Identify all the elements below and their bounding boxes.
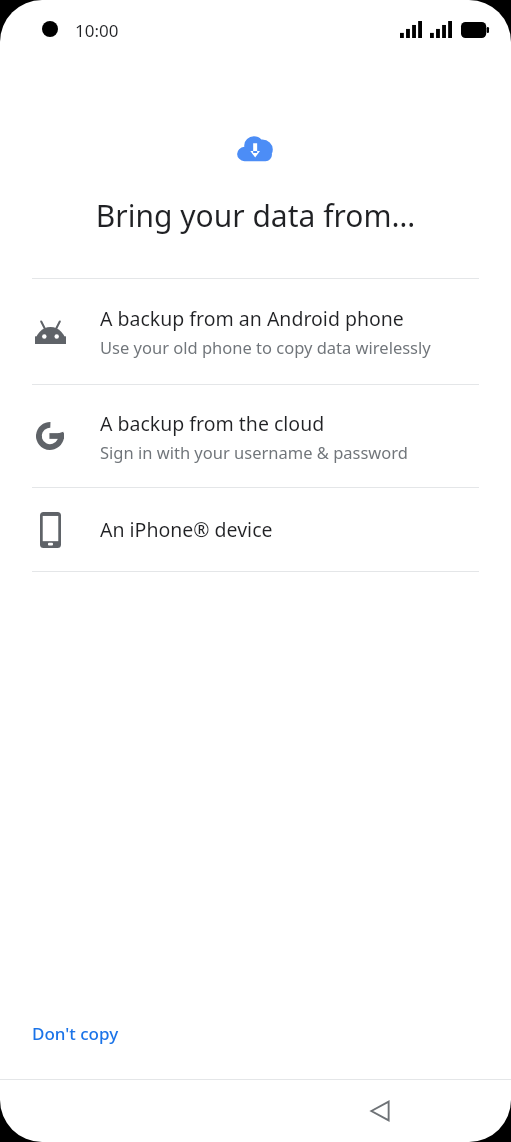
staticText: Don't copy xyxy=(32,1022,119,1045)
button[interactable]: Don't copy xyxy=(20,1014,131,1053)
staticText: Bring your data from… xyxy=(0,195,511,236)
button[interactable]: iPhone xyxy=(0,488,511,571)
button[interactable]: Back xyxy=(358,1089,402,1133)
other: Android xyxy=(35,321,66,344)
staticText: A backup from an Android phone xyxy=(100,305,404,332)
button[interactable]: Google xyxy=(0,385,511,487)
staticText: 10:00 xyxy=(75,19,119,42)
staticText: Sign in with your username & password xyxy=(100,441,408,463)
staticText: Use your old phone to copy data wireless… xyxy=(100,336,431,358)
staticText: An iPhone® device xyxy=(100,516,273,543)
other: Google xyxy=(36,422,64,450)
staticText: A backup from the cloud xyxy=(100,410,325,437)
button[interactable]: Android xyxy=(0,279,511,384)
other: iPhone xyxy=(40,512,61,548)
